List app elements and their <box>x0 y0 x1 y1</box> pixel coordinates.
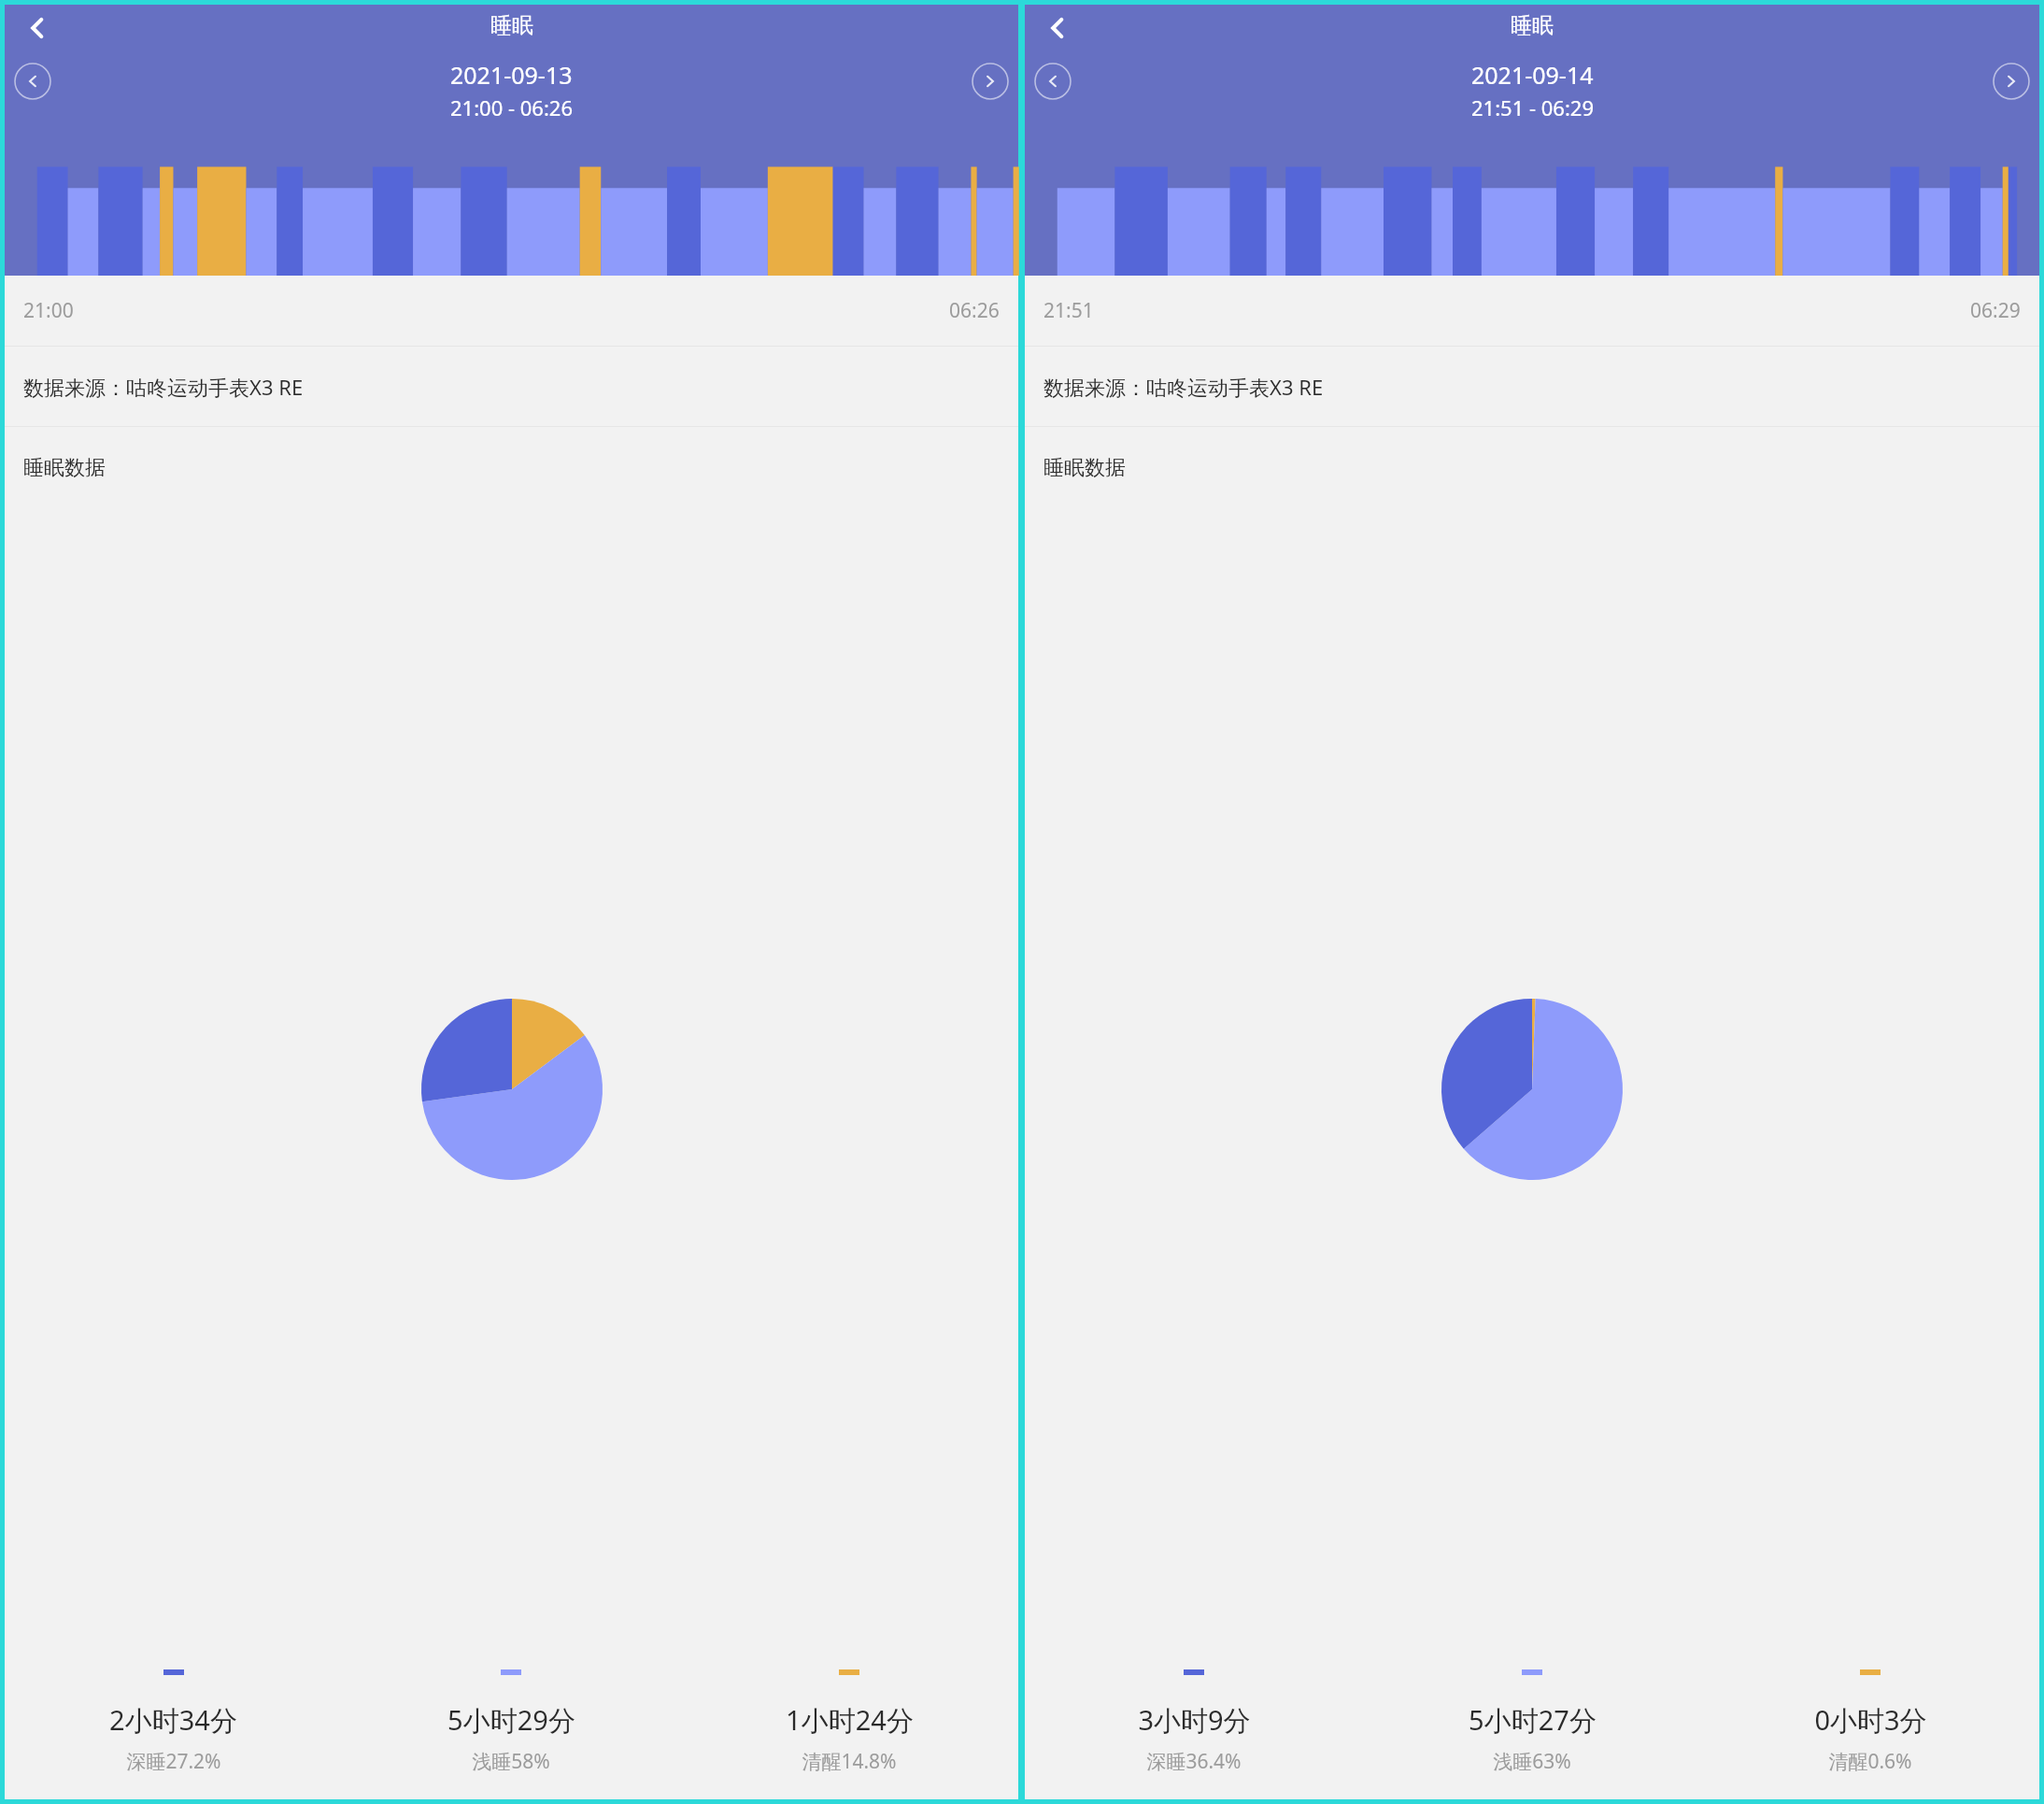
staticText: 睡眠 <box>490 12 533 39</box>
staticText: 浅睡58% <box>472 1748 550 1775</box>
staticText: 5小时29分 <box>447 1701 575 1739</box>
button[interactable]: Next day <box>1993 63 2030 100</box>
button[interactable]: 2小时34分 <box>5 1669 342 1775</box>
staticText: 数据来源：咕咚运动手表X3 RE <box>23 373 304 401</box>
staticText: 0小时3分 <box>1814 1701 1927 1739</box>
button[interactable]: 数据来源：咕咚运动手表X3 RE <box>1025 347 2039 426</box>
button[interactable]: 5小时27分 <box>1363 1669 1701 1775</box>
staticText: 06:26 <box>949 297 1000 324</box>
button[interactable]: Previous day <box>1034 63 1072 100</box>
button[interactable]: 3小时9分 <box>1025 1669 1363 1775</box>
button[interactable]: Previous day <box>14 63 51 100</box>
button[interactable]: 0小时3分 <box>1701 1669 2039 1775</box>
button[interactable]: Next day <box>972 63 1009 100</box>
button[interactable]: 数据来源：咕咚运动手表X3 RE <box>5 347 1018 426</box>
staticText: 5小时27分 <box>1469 1701 1597 1739</box>
staticText: 21:00 - 06:26 <box>450 93 573 121</box>
button[interactable]: 5小时29分 <box>342 1669 680 1775</box>
staticText: 1小时24分 <box>786 1701 914 1739</box>
staticText: 2021-09-14 <box>1471 59 1594 91</box>
staticText: 清醒0.6% <box>1828 1748 1912 1775</box>
staticText: 深睡27.2% <box>126 1748 221 1775</box>
staticText: 2021-09-13 <box>450 59 573 91</box>
staticText: 浅睡63% <box>1493 1748 1571 1775</box>
staticText: 2小时34分 <box>109 1701 237 1739</box>
staticText: 睡眠数据 <box>1043 455 1126 481</box>
staticText: 21:51 - 06:29 <box>1471 93 1594 121</box>
button[interactable]: Back <box>1038 8 1077 48</box>
staticText: 睡眠 <box>1511 12 1554 39</box>
staticText: 21:51 <box>1043 297 1094 324</box>
staticText: 深睡36.4% <box>1146 1748 1242 1775</box>
staticText: 3小时9分 <box>1138 1701 1251 1739</box>
staticText: 数据来源：咕咚运动手表X3 RE <box>1043 373 1324 401</box>
button[interactable]: 1小时24分 <box>680 1669 1018 1775</box>
staticText: 06:29 <box>1970 297 2021 324</box>
staticText: 睡眠数据 <box>23 455 106 481</box>
staticText: 清醒14.8% <box>802 1748 897 1775</box>
button[interactable]: Back <box>18 8 57 48</box>
staticText: 21:00 <box>23 297 74 324</box>
